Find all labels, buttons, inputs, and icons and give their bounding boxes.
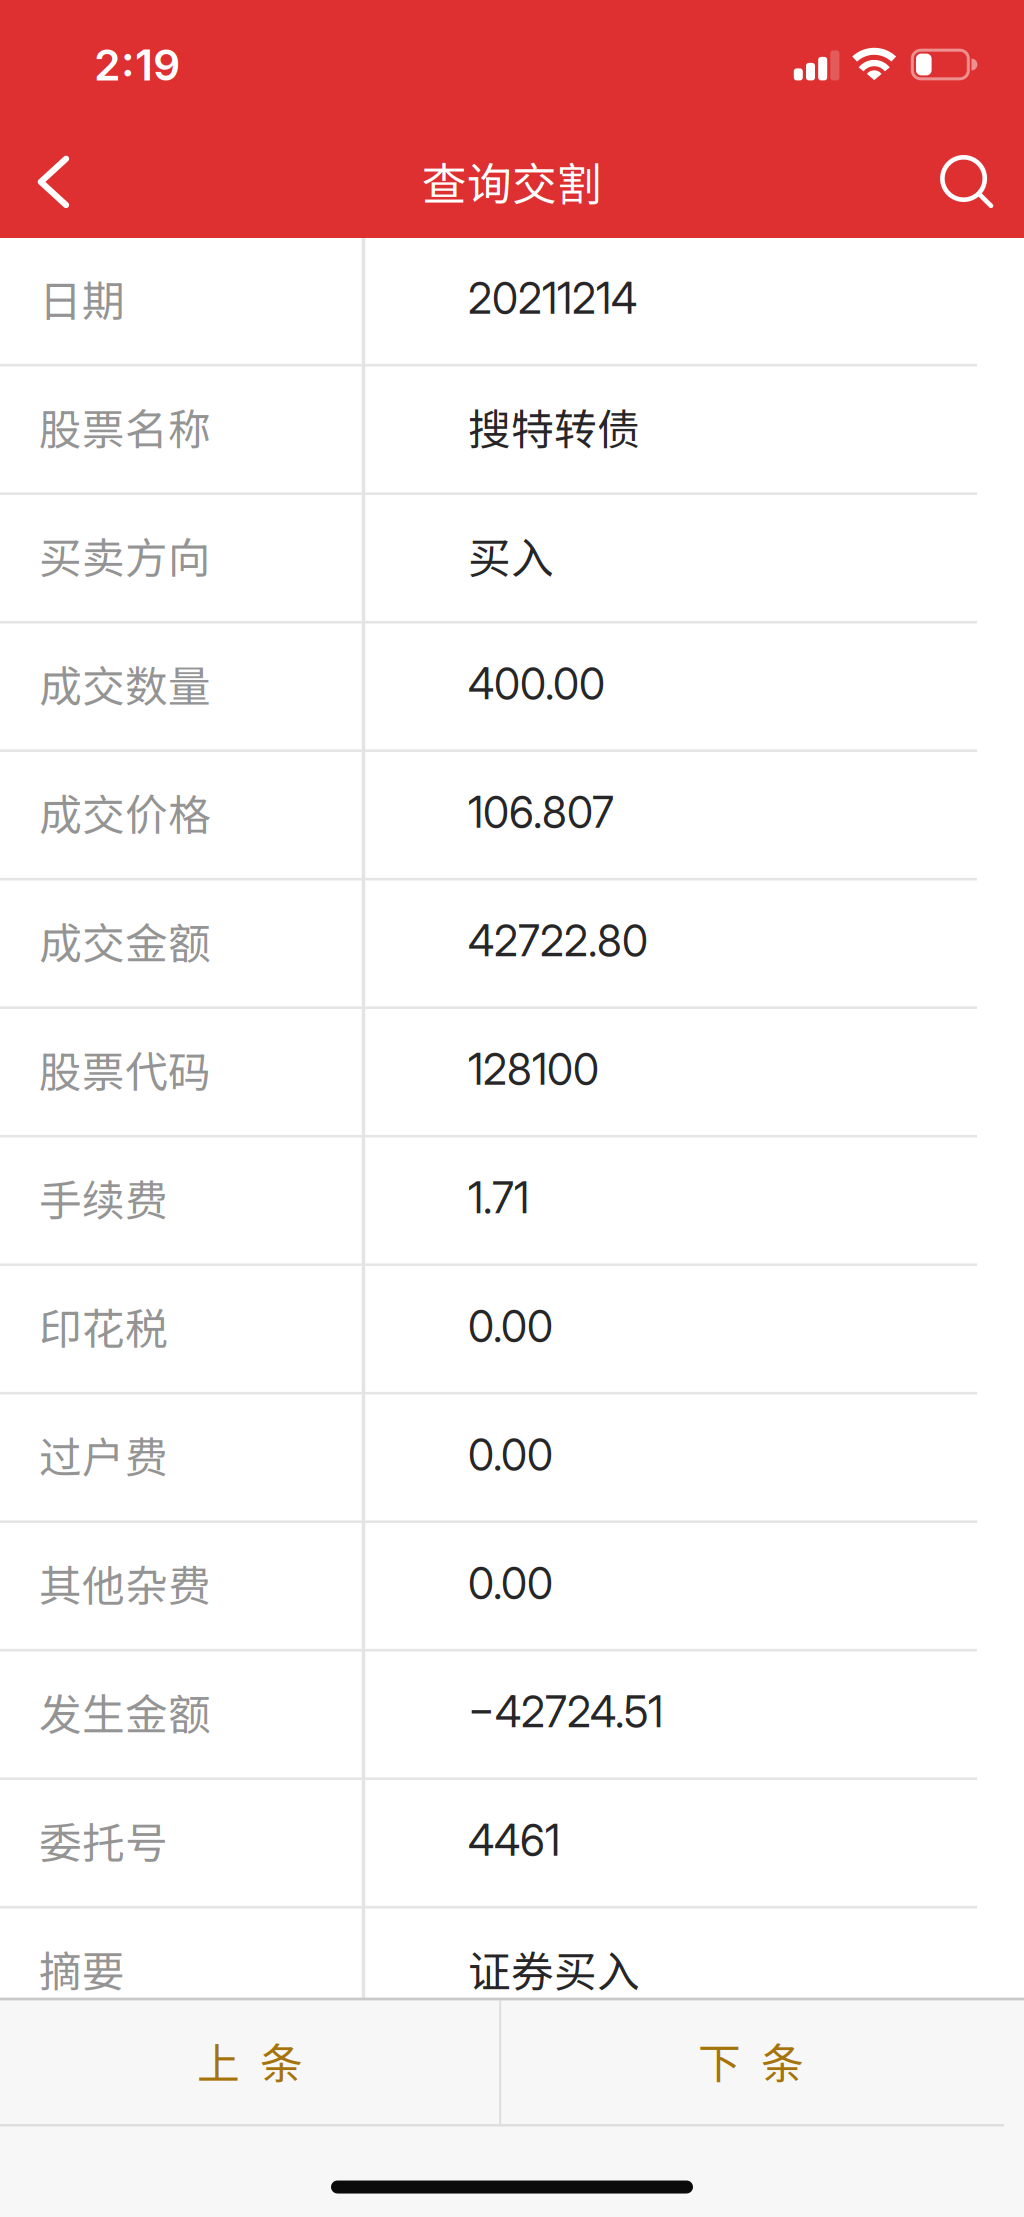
staticText: 搜特转债: [468, 396, 640, 458]
staticText: 0.00: [468, 1429, 553, 1480]
staticText: 106.807: [468, 787, 614, 838]
staticText: 其他杂费: [39, 1552, 211, 1614]
staticText: 成交价格: [39, 781, 211, 843]
staticText: 20211214: [468, 273, 637, 324]
staticText: 发生金额: [39, 1681, 211, 1743]
staticText: 42722.80: [468, 915, 648, 966]
button[interactable]: 上 条: [0, 1999, 500, 2126]
staticText: 上 条: [197, 2030, 303, 2092]
staticText: 股票代码: [39, 1038, 211, 1100]
staticText: 印花税: [39, 1295, 168, 1357]
staticText: 成交数量: [39, 653, 211, 715]
staticText: 委托号: [39, 1809, 168, 1871]
staticText: 400.00: [468, 658, 605, 709]
staticText: 手续费: [39, 1167, 168, 1229]
staticText: 日期: [39, 267, 125, 329]
staticText: 买入: [468, 524, 554, 586]
staticText: 证券买入: [468, 1938, 640, 2000]
staticText: 128100: [468, 1044, 599, 1095]
button[interactable]: 下 条: [500, 1999, 1024, 2126]
button[interactable]: Back: [0, 120, 110, 238]
staticText: 买卖方向: [39, 524, 211, 586]
staticText: 0.00: [468, 1558, 553, 1609]
staticText: 成交金额: [39, 910, 211, 972]
staticText: 查询交割: [422, 149, 602, 213]
staticText: 2:19: [94, 39, 180, 91]
staticText: −42724.51: [468, 1686, 663, 1737]
staticText: 摘要: [39, 1938, 125, 2000]
staticText: 1.71: [468, 1172, 529, 1223]
staticText: 0.00: [468, 1301, 553, 1352]
staticText: 股票名称: [39, 396, 211, 458]
staticText: 4461: [468, 1815, 560, 1866]
staticText: 过户费: [39, 1424, 168, 1486]
staticText: 下 条: [698, 2030, 804, 2092]
button[interactable]: Search: [914, 120, 1024, 238]
